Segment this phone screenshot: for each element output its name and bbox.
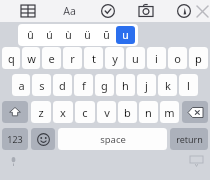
button[interactable]: s: [32, 74, 51, 96]
button[interactable]: t: [84, 47, 103, 69]
button[interactable]: v: [97, 101, 116, 123]
staticText: p: [195, 51, 202, 66]
staticText: r: [70, 51, 75, 66]
button[interactable]: u: [116, 26, 135, 44]
button[interactable]: ù: [59, 26, 78, 44]
staticText: ü: [84, 28, 91, 42]
button[interactable]: c: [75, 101, 95, 123]
staticText: ù: [65, 28, 72, 42]
button[interactable]: Table: [18, 1, 38, 21]
button[interactable]: g: [95, 74, 114, 96]
staticText: c: [82, 105, 88, 120]
staticText: ú: [46, 28, 53, 42]
button[interactable]: k: [158, 74, 177, 96]
staticText: d: [59, 78, 66, 93]
staticText: g: [101, 78, 108, 93]
staticText: ū: [103, 28, 110, 42]
staticText: w: [27, 51, 36, 66]
button[interactable]: o: [168, 47, 187, 69]
staticText: j: [145, 78, 148, 93]
button[interactable]: Backspace: [182, 101, 208, 123]
button[interactable]: h: [116, 74, 135, 96]
button[interactable]: û: [21, 26, 40, 44]
button[interactable]: Markup: [174, 1, 194, 21]
button[interactable]: l: [179, 74, 198, 96]
button[interactable]: ü: [78, 26, 97, 44]
staticText: q: [8, 51, 15, 66]
button[interactable]: Aa: [58, 2, 80, 20]
staticText: u: [122, 28, 129, 42]
button[interactable]: Dictation: [6, 154, 20, 168]
staticText: e: [48, 51, 55, 66]
button[interactable]: y: [105, 47, 124, 69]
button[interactable]: Camera: [136, 1, 156, 21]
staticText: k: [165, 78, 171, 93]
button[interactable]: q: [2, 47, 20, 69]
staticText: m: [164, 105, 175, 120]
staticText: i: [155, 51, 158, 66]
staticText: t: [92, 51, 96, 66]
button[interactable]: r: [63, 47, 82, 69]
button[interactable]: Hide keyboard: [188, 155, 204, 167]
button[interactable]: f: [74, 74, 93, 96]
button[interactable]: n: [139, 101, 158, 123]
button[interactable]: a: [12, 74, 30, 96]
button[interactable]: ū: [97, 26, 116, 44]
button[interactable]: j: [137, 74, 156, 96]
button[interactable]: Check: [98, 1, 118, 21]
staticText: l: [187, 78, 190, 93]
staticText: n: [145, 105, 152, 120]
button[interactable]: z: [31, 101, 51, 123]
staticText: y: [112, 51, 118, 66]
staticText: h: [122, 78, 129, 93]
staticText: a: [18, 78, 25, 93]
staticText: 123: [7, 133, 23, 145]
button[interactable]: return: [170, 128, 208, 150]
button[interactable]: d: [53, 74, 72, 96]
staticText: x: [60, 105, 66, 120]
staticText: Aa: [63, 4, 76, 18]
button[interactable]: Emoji: [31, 128, 55, 150]
staticText: s: [39, 78, 45, 93]
button[interactable]: e: [42, 47, 61, 69]
button[interactable]: Shift: [2, 101, 28, 123]
button[interactable]: w: [22, 47, 40, 69]
staticText: b: [124, 105, 131, 120]
staticText: û: [27, 28, 34, 42]
button[interactable]: m: [160, 101, 179, 123]
staticText: f: [82, 78, 86, 93]
button[interactable]: 123: [2, 128, 28, 150]
staticText: o: [174, 51, 181, 66]
button[interactable]: space: [58, 128, 167, 150]
button[interactable]: b: [118, 101, 137, 123]
button[interactable]: ú: [40, 26, 59, 44]
staticText: v: [104, 105, 110, 120]
staticText: space: [100, 133, 126, 146]
button[interactable]: Close: [194, 1, 210, 21]
staticText: z: [38, 105, 44, 120]
staticText: u: [132, 51, 139, 66]
staticText: return: [176, 133, 203, 145]
button[interactable]: p: [189, 47, 208, 69]
button[interactable]: x: [53, 101, 73, 123]
button[interactable]: u: [126, 47, 145, 69]
button[interactable]: i: [147, 47, 166, 69]
